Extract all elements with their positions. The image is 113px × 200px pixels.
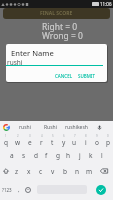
button[interactable]: 5 <box>47 133 58 148</box>
staticText: x <box>27 167 31 176</box>
button[interactable]: n <box>71 163 83 179</box>
button[interactable]: 4 <box>36 133 47 148</box>
staticText: 4 <box>41 134 43 138</box>
staticText: u <box>72 138 77 147</box>
staticText: n <box>75 167 80 176</box>
staticText: 1 <box>5 134 7 138</box>
staticText: rushikesh <box>65 124 88 131</box>
button[interactable]: SUBMIT <box>76 72 97 80</box>
staticText: 11:06 <box>100 1 112 7</box>
staticText: w <box>15 138 21 147</box>
button[interactable]: j <box>74 148 85 163</box>
staticText: e <box>28 138 32 147</box>
staticText: Right = 0 Wrong = 0 <box>42 21 83 42</box>
staticText: b <box>63 167 67 176</box>
button[interactable]: z <box>11 163 23 179</box>
button[interactable]: 2 <box>12 133 24 148</box>
button[interactable]: s <box>18 148 30 163</box>
staticText: Rushi <box>44 124 57 131</box>
button[interactable]: rushi <box>12 121 38 133</box>
other: Voice input <box>97 125 102 130</box>
button[interactable]: f <box>41 148 52 163</box>
button[interactable]: h <box>63 148 74 163</box>
staticText: 3 <box>29 134 31 138</box>
button[interactable]: Emoji <box>23 179 33 200</box>
staticText: 8 <box>85 134 87 138</box>
button[interactable]: FINAL SCORE <box>3 8 110 19</box>
button[interactable]: 8 <box>80 133 91 148</box>
staticText: rushi <box>19 124 31 131</box>
button[interactable]: rushikesh <box>62 121 90 133</box>
button[interactable]: , <box>14 179 23 200</box>
button[interactable]: 6 <box>58 133 69 148</box>
staticText: rushi <box>7 58 23 67</box>
staticText: d <box>34 151 38 160</box>
staticText: l <box>101 151 103 160</box>
button[interactable]: m <box>83 163 95 179</box>
staticText: g <box>56 151 60 160</box>
button[interactable]: Rushi <box>38 121 62 133</box>
staticText: q <box>4 138 8 147</box>
staticText: m <box>86 167 93 176</box>
staticText: p <box>106 138 110 147</box>
staticText: j <box>79 151 81 160</box>
button[interactable]: Backspace <box>95 163 113 179</box>
staticText: 6 <box>63 134 65 138</box>
staticText: FINAL SCORE <box>40 10 73 17</box>
staticText: t <box>51 138 54 147</box>
button[interactable]: 0 <box>102 133 113 148</box>
button[interactable]: g <box>52 148 63 163</box>
button[interactable]: ?123 <box>0 179 14 200</box>
staticText: a <box>10 151 14 160</box>
staticText: ?123 <box>2 187 12 193</box>
staticText: 9 <box>96 134 98 138</box>
staticText: 0 <box>107 134 109 138</box>
staticText: c <box>39 167 43 176</box>
button[interactable]: a <box>6 148 18 163</box>
button[interactable]: CANCEL <box>53 72 75 80</box>
button[interactable]: 9 <box>91 133 102 148</box>
button[interactable]: k <box>85 148 96 163</box>
button[interactable]: b <box>59 163 71 179</box>
button[interactable]: Enter <box>96 185 106 195</box>
button[interactable]: 7 <box>69 133 80 148</box>
staticText: r <box>40 138 43 147</box>
button[interactable]: d <box>30 148 41 163</box>
button[interactable]: c <box>35 163 47 179</box>
staticText: y <box>62 138 66 147</box>
staticText: o <box>95 138 99 147</box>
staticText: h <box>66 151 71 160</box>
staticText: z <box>15 167 19 176</box>
button[interactable]: 1 <box>0 133 12 148</box>
staticText: 2 <box>17 134 19 138</box>
staticText: k <box>89 151 93 160</box>
staticText: v <box>51 167 55 176</box>
staticText: Enter Name <box>11 48 54 58</box>
button[interactable]: x <box>23 163 35 179</box>
staticText: SUBMIT <box>78 73 95 79</box>
button[interactable]: v <box>47 163 59 179</box>
staticText: , <box>18 186 20 194</box>
staticText: 7 <box>74 134 76 138</box>
staticText: f <box>45 151 48 160</box>
button[interactable]: 3 <box>24 133 36 148</box>
button[interactable]: l <box>96 148 107 163</box>
staticText: s <box>22 151 26 160</box>
staticText: i <box>85 138 87 147</box>
staticText: 5 <box>52 134 54 138</box>
button[interactable]: Shift <box>0 163 11 179</box>
staticText: CANCEL <box>55 73 73 79</box>
